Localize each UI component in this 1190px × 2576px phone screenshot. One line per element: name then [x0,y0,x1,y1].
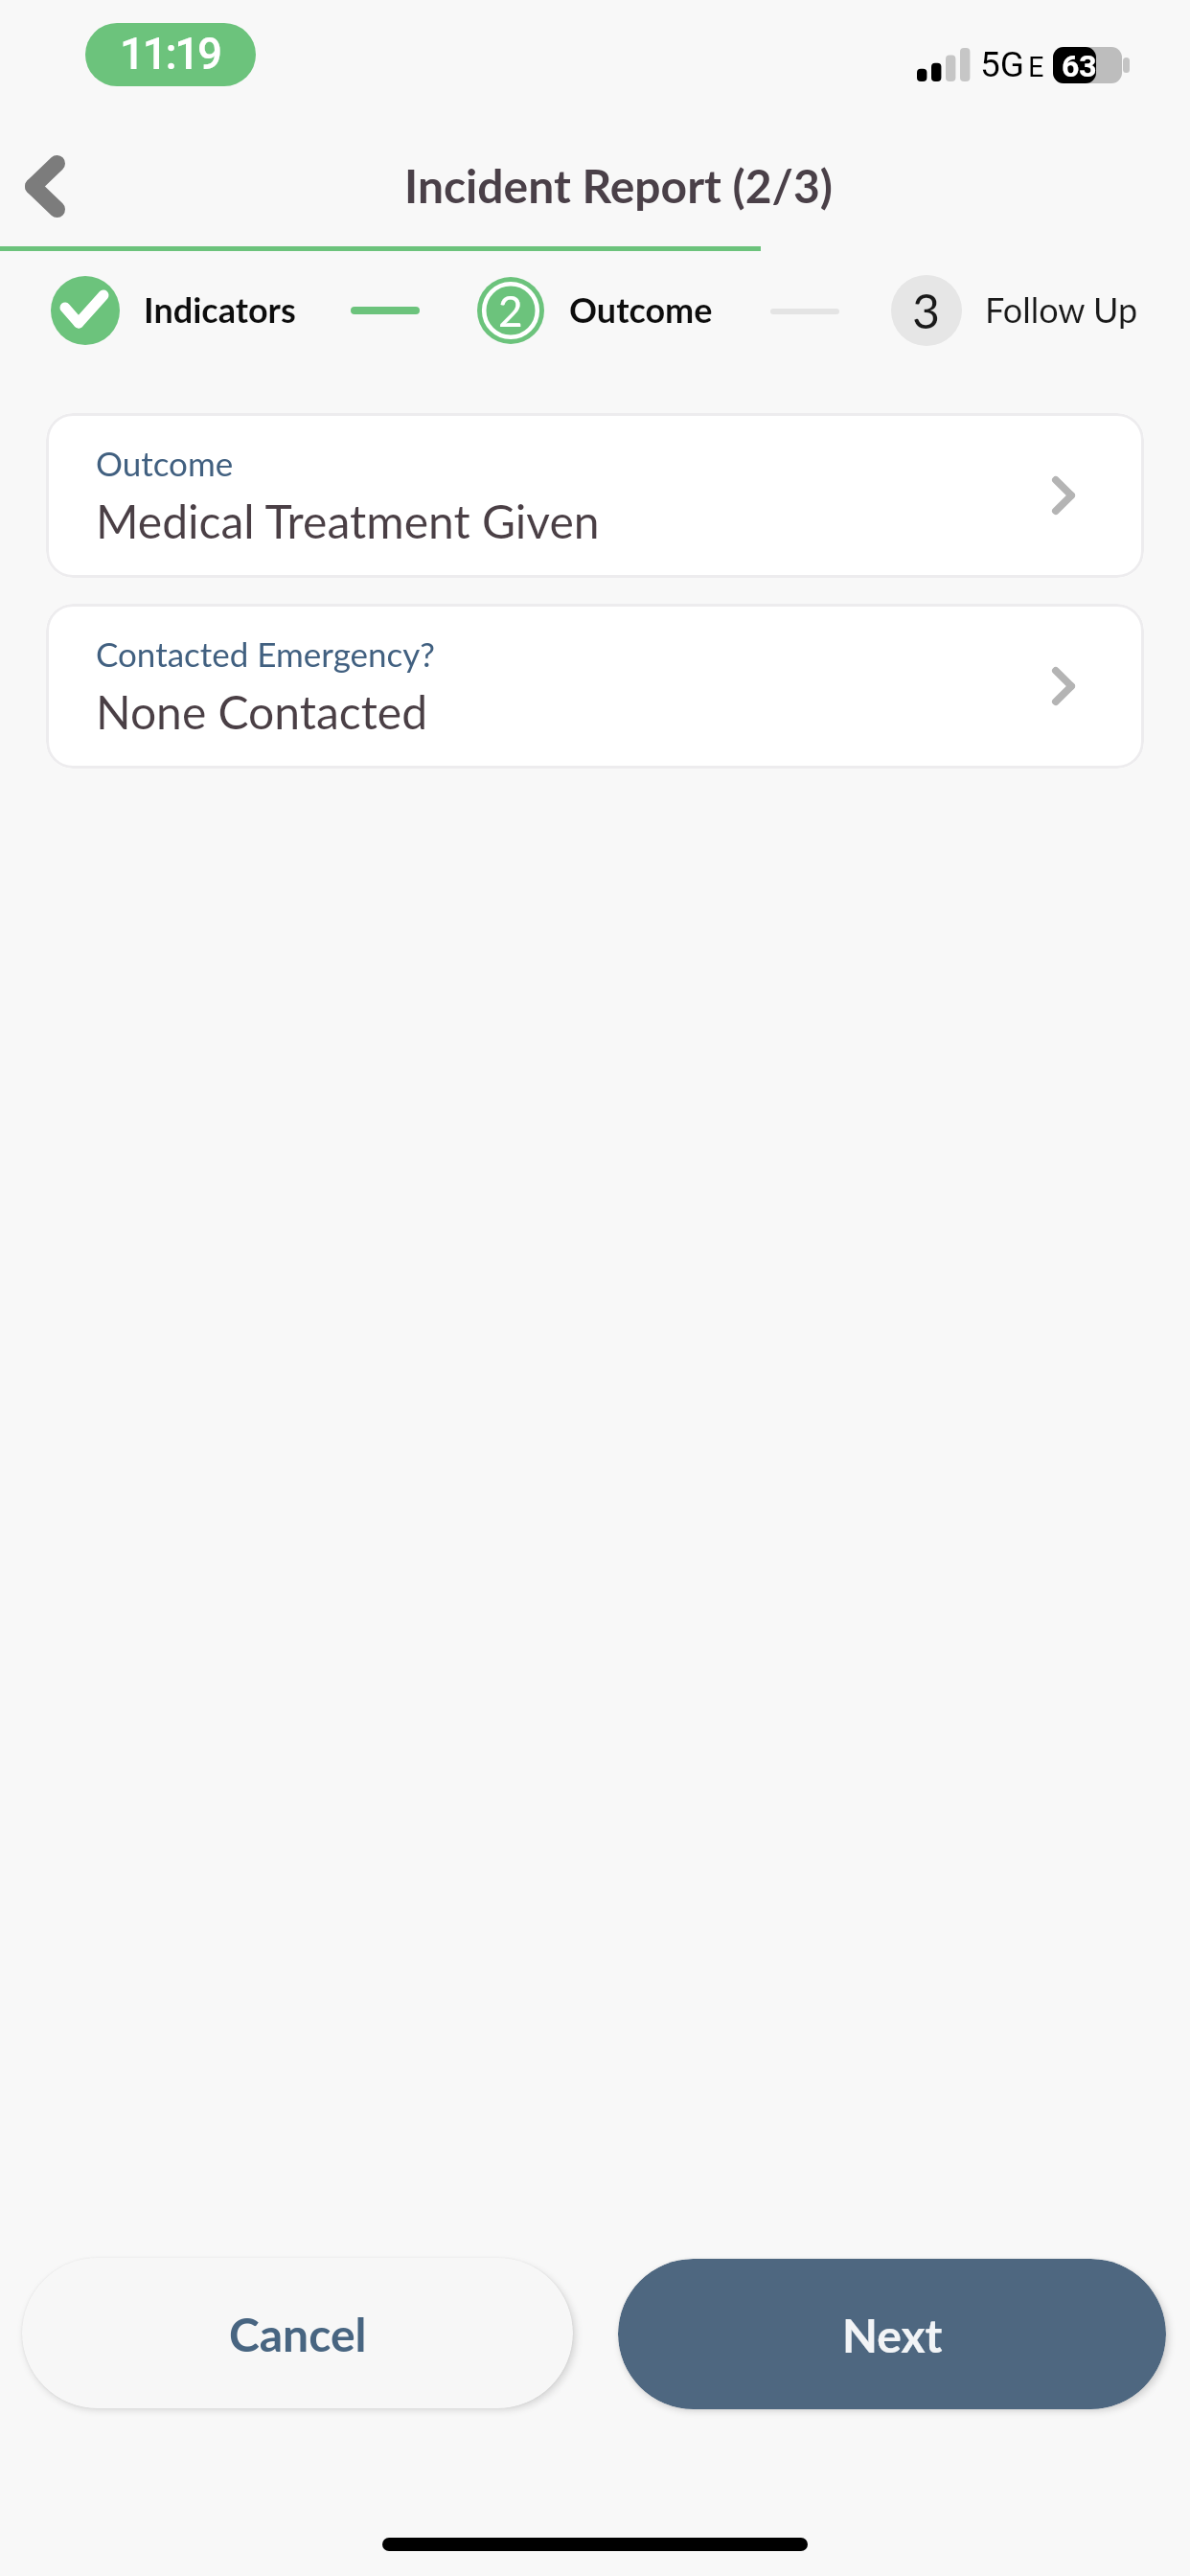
staticText: 2 [498,286,523,336]
staticText: Follow Up [985,288,1138,330]
button[interactable]: Follow Up step [891,275,962,346]
button[interactable]: Indicators step completed [51,276,120,345]
staticText: Medical Treatment Given [96,494,600,549]
button[interactable]: Contacted Emergency? [46,604,1144,769]
button[interactable]: Back [0,134,92,238]
staticText: 11:19 [120,28,220,80]
staticText: Contacted Emergency? [96,633,435,674]
staticText: Cancel [229,2307,367,2362]
button[interactable]: Outcome [46,413,1144,578]
button[interactable]: Cancel [22,2258,573,2408]
button[interactable]: Outcome step current [477,277,544,344]
staticText: E [1028,51,1044,83]
staticText: None Contacted [96,684,428,740]
staticText: Indicators [144,288,296,330]
staticText: Outcome [569,288,713,330]
staticText: Outcome [96,443,234,483]
staticText: Next [842,2308,943,2363]
staticText: Incident Report (2/3) [404,158,833,214]
staticText: 5G [980,44,1024,85]
staticText: 63 [1062,48,1097,84]
staticText: 3 [912,282,941,339]
button[interactable]: Next [618,2259,1166,2409]
